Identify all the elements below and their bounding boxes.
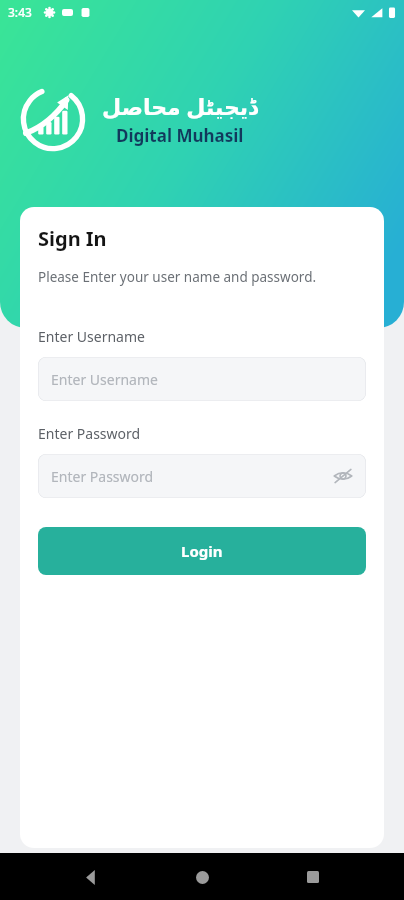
button[interactable]: Toggle password visibility xyxy=(332,465,354,487)
staticText: Digital Muhasil xyxy=(116,124,244,147)
staticText: Enter Username xyxy=(51,370,158,389)
staticText: Sign In xyxy=(38,225,107,252)
staticText: Enter Password xyxy=(38,424,141,443)
staticText: 3:43 xyxy=(8,4,32,20)
staticText: ڈیجیٹل محاصل xyxy=(102,91,258,121)
staticText: Enter Username xyxy=(38,327,145,346)
button[interactable]: Recent apps xyxy=(293,857,333,897)
button[interactable]: Password input xyxy=(38,454,366,498)
staticText: Please Enter your user name and password… xyxy=(38,268,317,286)
button[interactable]: Home xyxy=(182,857,222,897)
staticText: Enter Password xyxy=(51,467,154,486)
button[interactable]: Back xyxy=(71,857,111,897)
button[interactable]: Username input xyxy=(38,357,366,401)
button[interactable]: Login xyxy=(38,527,366,575)
staticText: Login xyxy=(181,541,223,561)
